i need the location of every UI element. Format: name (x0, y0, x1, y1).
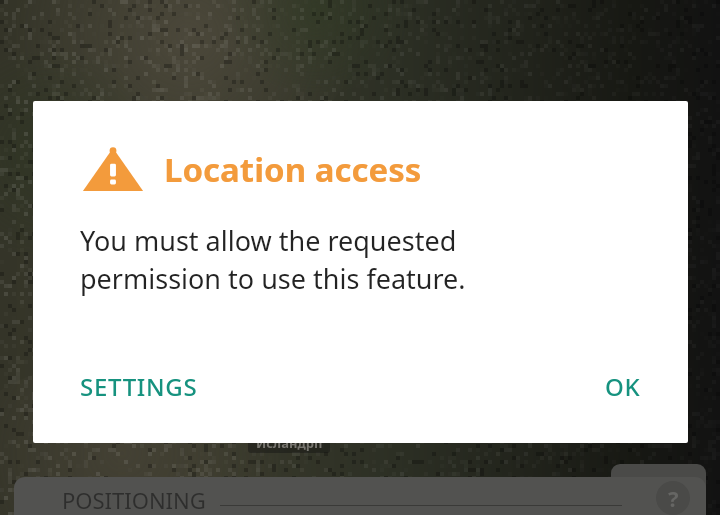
staticText: OK (605, 370, 641, 403)
staticText: Исландрп (256, 434, 323, 452)
staticText: POSITIONING (62, 485, 206, 515)
button[interactable]: Help (656, 481, 690, 515)
staticText: You must allow the requested permission … (80, 222, 568, 297)
staticText: SETTINGS (80, 370, 198, 403)
button[interactable]: SETTINGS (66, 360, 212, 413)
button[interactable] (611, 464, 706, 490)
button[interactable]: OK (591, 360, 655, 413)
staticText: Location access (164, 147, 422, 192)
staticText: ? (668, 483, 679, 513)
